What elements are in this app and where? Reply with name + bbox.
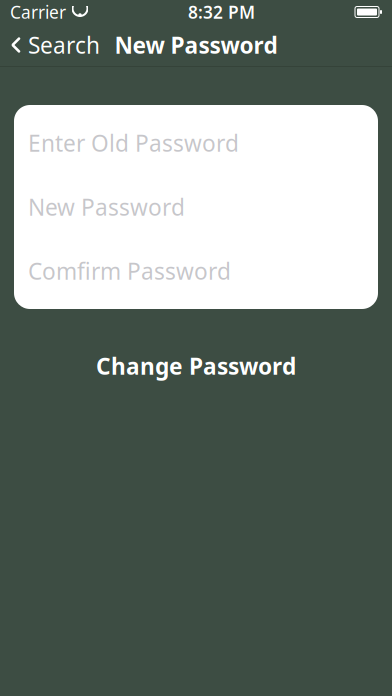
button[interactable]: Change Password — [0, 339, 392, 393]
staticText: 8:32 PM — [188, 0, 255, 23]
button[interactable]: Search — [0, 24, 100, 66]
staticText: Enter Old Password — [28, 128, 239, 158]
staticText: Comfirm Password — [28, 256, 231, 286]
staticText: Carrier — [10, 0, 66, 23]
staticText: New Password — [114, 30, 277, 60]
staticText: Change Password — [96, 351, 296, 381]
staticText: Search — [28, 30, 100, 60]
staticText: New Password — [28, 192, 185, 222]
